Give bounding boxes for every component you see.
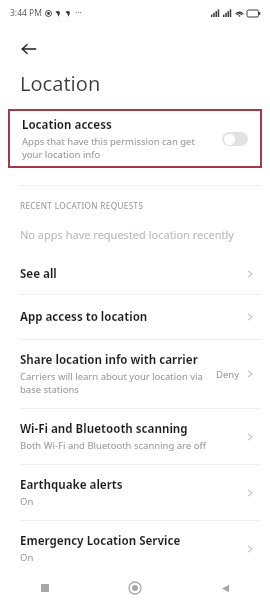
staticText: RECENT LOCATION REQUESTS bbox=[20, 200, 144, 211]
staticText: No apps have requested location recently bbox=[20, 227, 234, 242]
staticText: Emergency Location Service bbox=[20, 533, 181, 549]
button[interactable]: Back bbox=[12, 32, 46, 66]
staticText: See all bbox=[20, 266, 57, 282]
button[interactable]: Location access toggle bbox=[222, 132, 248, 146]
staticText: ··· bbox=[75, 7, 82, 19]
button[interactable]: Earthquake alerts bbox=[0, 465, 270, 520]
button[interactable]: Wi-Fi and Bluetooth scanning bbox=[0, 409, 270, 464]
staticText: Apps that have this permission can get y… bbox=[22, 135, 216, 161]
button[interactable]: App access to location bbox=[0, 295, 270, 339]
staticText: App access to location bbox=[20, 309, 148, 325]
staticText: Earthquake alerts bbox=[20, 477, 123, 493]
staticText: Share location info with carrier bbox=[20, 352, 198, 368]
button[interactable]: Emergency Location Service bbox=[0, 521, 270, 576]
staticText: Wi-Fi and Bluetooth scanning bbox=[20, 421, 188, 437]
button[interactable]: See all bbox=[0, 258, 270, 294]
staticText: Location bbox=[20, 70, 101, 97]
staticText: On bbox=[20, 495, 34, 508]
staticText: On bbox=[20, 551, 34, 564]
button[interactable]: Recents bbox=[0, 576, 90, 600]
button[interactable]: Back bbox=[180, 576, 270, 600]
staticText: 3:44 PM bbox=[10, 7, 42, 19]
staticText: Deny bbox=[216, 368, 240, 381]
button[interactable]: Home bbox=[90, 576, 180, 600]
staticText: Location access bbox=[22, 117, 112, 133]
button[interactable]: Share location info with carrier bbox=[0, 340, 270, 408]
button[interactable]: Location access bbox=[10, 111, 260, 166]
staticText: Carriers will learn about your location … bbox=[20, 370, 212, 396]
staticText: Both Wi-Fi and Bluetooth scanning are of… bbox=[20, 439, 206, 452]
